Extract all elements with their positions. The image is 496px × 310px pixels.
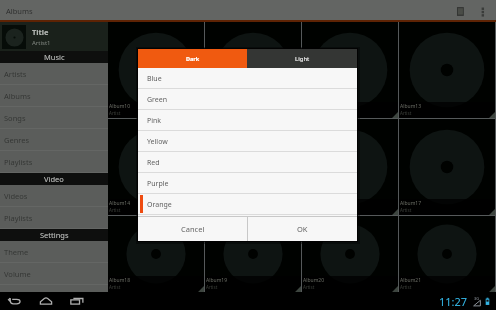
button[interactable]: Albums bbox=[0, 85, 108, 107]
button[interactable]: Songs bbox=[0, 107, 108, 129]
staticText: Playlists bbox=[4, 213, 33, 223]
button[interactable]: Red bbox=[138, 152, 357, 173]
staticText: 11:27 bbox=[439, 294, 468, 309]
staticText: Artists bbox=[4, 69, 27, 79]
staticText: Artist bbox=[303, 284, 315, 290]
button[interactable]: Recents bbox=[66, 292, 88, 310]
staticText: Artist bbox=[109, 284, 121, 290]
button[interactable]: Cancel bbox=[138, 217, 247, 241]
staticText: Artist bbox=[400, 110, 412, 116]
staticText: Yellow bbox=[147, 137, 168, 147]
button[interactable]: Album15 bbox=[205, 119, 301, 215]
button[interactable]: Playlists bbox=[0, 151, 108, 173]
staticText: Pink bbox=[147, 116, 162, 126]
button[interactable]: OK bbox=[248, 217, 357, 241]
button[interactable]: Artists bbox=[0, 63, 108, 85]
staticText: Album13 bbox=[400, 103, 422, 110]
button[interactable]: Album10 bbox=[108, 22, 204, 118]
staticText: Playlists bbox=[4, 157, 33, 167]
button[interactable]: Album17 bbox=[399, 119, 495, 215]
staticText: Artist bbox=[109, 110, 121, 116]
staticText: Artist bbox=[400, 207, 412, 213]
staticText: Settings bbox=[40, 230, 69, 240]
staticText: Blue bbox=[147, 74, 162, 84]
staticText: Album11 bbox=[206, 103, 228, 110]
staticText: OK bbox=[297, 224, 308, 234]
staticText: Album21 bbox=[400, 277, 422, 284]
button[interactable]: Album11 bbox=[205, 22, 301, 118]
staticText: Genres bbox=[4, 135, 30, 145]
button[interactable]: Album16 bbox=[302, 119, 398, 215]
button[interactable]: More options bbox=[471, 0, 493, 22]
button[interactable]: Orange bbox=[138, 194, 357, 215]
button[interactable]: Album19 bbox=[205, 216, 301, 292]
button[interactable]: Back bbox=[4, 292, 26, 310]
button[interactable]: Album12 bbox=[302, 22, 398, 118]
staticText: Title bbox=[32, 27, 49, 37]
staticText: Purple bbox=[147, 179, 169, 189]
staticText: 3G bbox=[474, 296, 480, 301]
staticText: Album20 bbox=[303, 277, 325, 284]
staticText: Dark bbox=[186, 55, 200, 62]
staticText: Green bbox=[147, 95, 168, 105]
staticText: Songs bbox=[4, 113, 26, 123]
staticText: Album10 bbox=[109, 103, 131, 110]
staticText: Albums bbox=[6, 6, 33, 16]
button[interactable]: Blue bbox=[138, 68, 357, 89]
button[interactable]: Album21 bbox=[399, 216, 495, 292]
staticText: Volume bbox=[4, 269, 31, 279]
staticText: Music bbox=[44, 52, 65, 62]
staticText: Album12 bbox=[303, 103, 325, 110]
staticText: Video bbox=[44, 174, 64, 184]
button[interactable]: Album13 bbox=[399, 22, 495, 118]
button[interactable]: Grid view bbox=[449, 0, 471, 22]
button[interactable]: Green bbox=[138, 89, 357, 110]
staticText: Orange bbox=[147, 200, 172, 210]
button[interactable]: Home bbox=[35, 292, 57, 310]
button[interactable]: Album14 bbox=[108, 119, 204, 215]
button[interactable]: Dark bbox=[138, 49, 247, 68]
staticText: Cancel bbox=[181, 224, 205, 234]
button[interactable]: Album20 bbox=[302, 216, 398, 292]
button[interactable]: Yellow bbox=[138, 131, 357, 152]
button[interactable]: Playlists bbox=[0, 207, 108, 229]
staticText: Artist bbox=[109, 207, 121, 213]
button[interactable]: Purple bbox=[138, 173, 357, 194]
staticText: Artist bbox=[400, 284, 412, 290]
staticText: Album19 bbox=[206, 277, 228, 284]
staticText: Album17 bbox=[400, 200, 422, 207]
staticText: Artist bbox=[206, 284, 218, 290]
button[interactable]: Volume bbox=[0, 263, 108, 285]
staticText: Albums bbox=[4, 91, 31, 101]
staticText: Album18 bbox=[109, 277, 131, 284]
staticText: Theme bbox=[4, 247, 29, 257]
button[interactable]: Theme bbox=[0, 241, 108, 263]
button[interactable]: Videos bbox=[0, 185, 108, 207]
staticText: Red bbox=[147, 158, 160, 168]
button[interactable]: Title bbox=[0, 22, 108, 51]
button[interactable]: Pink bbox=[138, 110, 357, 131]
staticText: Light bbox=[295, 55, 310, 63]
button[interactable]: Album18 bbox=[108, 216, 204, 292]
staticText: Artist1 bbox=[32, 39, 51, 47]
staticText: Album14 bbox=[109, 200, 131, 207]
button[interactable]: Light bbox=[247, 49, 357, 68]
button[interactable]: Genres bbox=[0, 129, 108, 151]
staticText: Videos bbox=[4, 191, 28, 201]
